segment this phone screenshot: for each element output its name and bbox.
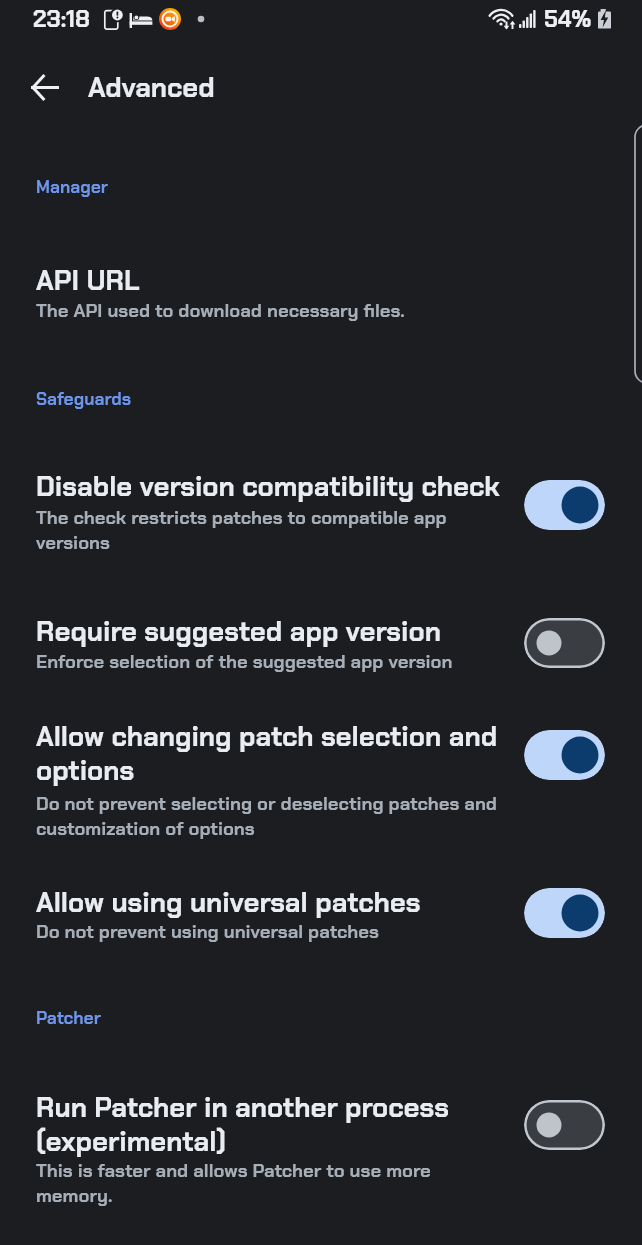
- staticText: This is faster and allows Patcher to use…: [36, 1159, 466, 1208]
- button[interactable]: API URL: [0, 248, 642, 338]
- button[interactable]: Allow changing patch selection and optio…: [524, 730, 605, 780]
- staticText: Enforce selection of the suggested app v…: [36, 650, 476, 674]
- staticText: Do not prevent selecting or deselecting …: [36, 792, 506, 841]
- staticText: Safeguards: [36, 388, 131, 411]
- staticText: Disable version compatibility check: [36, 469, 516, 505]
- staticText: Manager: [36, 176, 108, 199]
- button[interactable]: Run Patcher in another process (experime…: [524, 1100, 605, 1150]
- staticText: Allow changing patch selection and optio…: [36, 719, 516, 789]
- staticText: The API used to download necessary files…: [36, 299, 506, 323]
- button[interactable]: Allow changing patch selection and optio…: [0, 702, 642, 847]
- button[interactable]: Disable version compatibility check, on: [524, 480, 605, 530]
- staticText: 54%: [544, 4, 592, 34]
- staticText: 23:18: [33, 4, 91, 35]
- staticText: Allow using universal patches: [36, 885, 516, 921]
- staticText: Advanced: [88, 70, 215, 105]
- staticText: Do not prevent using universal patches: [36, 920, 506, 944]
- staticText: The check restricts patches to compatibl…: [36, 506, 476, 555]
- staticText: Run Patcher in another process (experime…: [36, 1090, 506, 1160]
- staticText: Patcher: [36, 1007, 101, 1030]
- button[interactable]: Require suggested app version: [0, 596, 642, 686]
- button[interactable]: Allow using universal patches: [0, 868, 642, 958]
- button[interactable]: Allow using universal patches, on: [524, 888, 605, 938]
- staticText: Require suggested app version: [36, 614, 516, 650]
- staticText: API URL: [36, 263, 516, 299]
- button[interactable]: Disable version compatibility check: [0, 452, 642, 572]
- button[interactable]: Back: [20, 63, 68, 111]
- button[interactable]: Run Patcher in another process (experime…: [0, 1073, 642, 1218]
- button[interactable]: Require suggested app version, off: [524, 618, 605, 668]
